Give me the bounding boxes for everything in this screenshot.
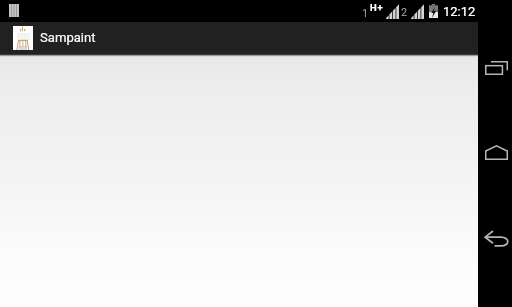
staticText: H+ (370, 2, 384, 13)
staticText: 1 (362, 7, 369, 20)
button[interactable]: Home (479, 135, 512, 169)
button[interactable]: Sampaint (0, 22, 478, 54)
staticText: Sampaint (40, 30, 96, 45)
button[interactable]: Recent apps (479, 51, 512, 85)
staticText: 2 (401, 6, 408, 19)
button[interactable]: Back (479, 221, 512, 255)
staticText: 12:12 (443, 4, 476, 19)
